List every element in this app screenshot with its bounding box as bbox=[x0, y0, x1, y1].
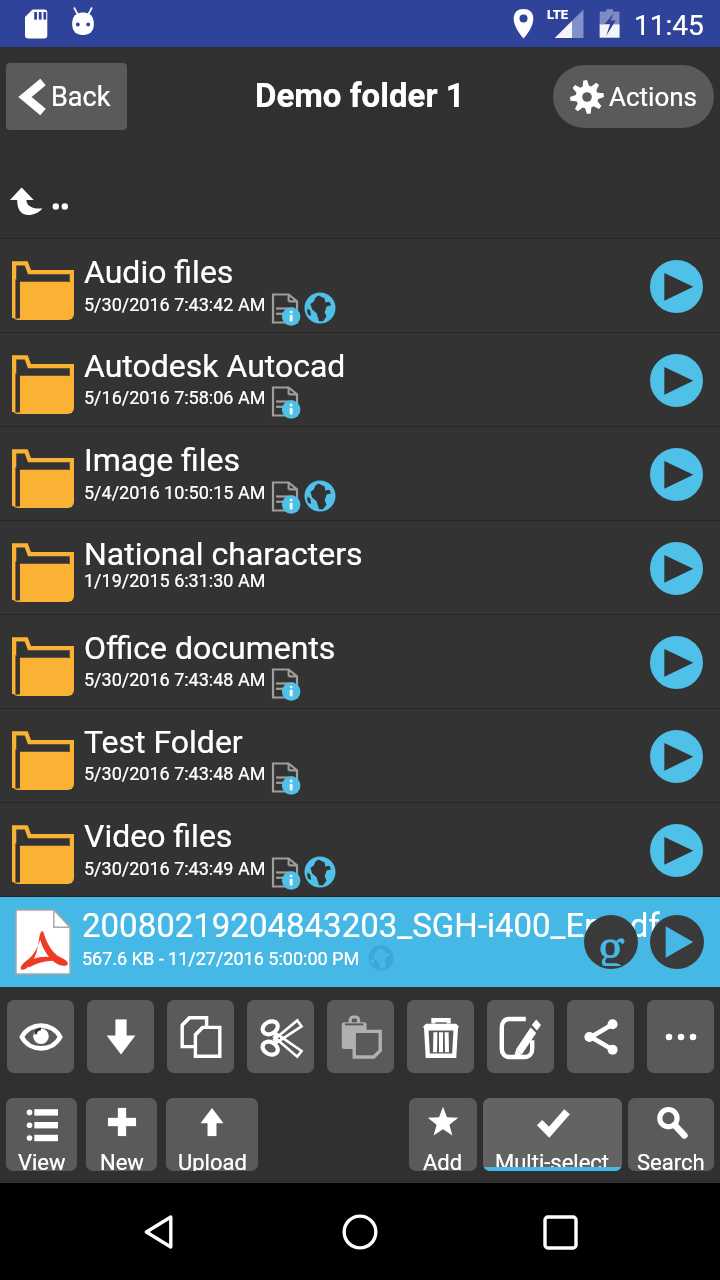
button[interactable]: Delete bbox=[407, 1000, 474, 1073]
button[interactable]: Search bbox=[628, 1098, 714, 1171]
staticText: Back bbox=[51, 81, 111, 113]
button[interactable]: View bbox=[6, 1098, 77, 1171]
staticText: Audio files bbox=[84, 253, 234, 291]
button[interactable]: Play bbox=[650, 542, 703, 595]
button[interactable]: Back bbox=[120, 1192, 200, 1272]
button[interactable]: Play bbox=[650, 260, 703, 313]
staticText: Video files bbox=[84, 817, 233, 855]
button[interactable]: Play bbox=[650, 354, 703, 407]
staticText: 5/30/2016 7:43:48 AM bbox=[84, 763, 266, 784]
button[interactable]: Autodesk Autocad bbox=[0, 333, 720, 427]
staticText: LTE bbox=[547, 7, 569, 22]
staticText: Multi-select bbox=[495, 1150, 610, 1171]
staticText: Search bbox=[637, 1150, 705, 1171]
button[interactable]: Cut bbox=[247, 1000, 314, 1073]
staticText: 5/4/2016 10:50:15 AM bbox=[84, 482, 266, 503]
button[interactable]: Play bbox=[650, 730, 703, 783]
button[interactable]: New bbox=[86, 1098, 157, 1171]
staticText: 11:45 bbox=[634, 9, 704, 42]
staticText: 1/19/2015 6:31:30 AM bbox=[84, 570, 266, 591]
button[interactable]: Rename bbox=[487, 1000, 554, 1073]
button[interactable]: Copy bbox=[167, 1000, 234, 1073]
button[interactable]: Audio files bbox=[0, 239, 720, 333]
button[interactable]: Share bbox=[567, 1000, 634, 1073]
staticText: Demo folder 1 bbox=[255, 76, 465, 115]
staticText: 5/30/2016 7:43:42 AM bbox=[84, 294, 266, 315]
button[interactable]: Upload bbox=[166, 1098, 258, 1171]
staticText: Office documents bbox=[84, 629, 336, 667]
button[interactable]: Paste bbox=[327, 1000, 394, 1073]
staticText: Upload bbox=[178, 1150, 247, 1171]
button[interactable]: Play bbox=[650, 915, 704, 969]
staticText: Image files bbox=[84, 441, 241, 479]
button[interactable]: Back bbox=[6, 63, 127, 130]
button[interactable]: Play bbox=[650, 636, 703, 689]
button[interactable]: Preview bbox=[7, 1000, 74, 1073]
button[interactable]: Play bbox=[650, 824, 703, 877]
button[interactable]: National characters bbox=[0, 521, 720, 615]
button[interactable] bbox=[0, 143, 720, 239]
button[interactable]: Recents bbox=[520, 1192, 600, 1272]
staticText: 20080219204843203_SGH-i400_En.pdf bbox=[82, 906, 660, 945]
staticText: Actions bbox=[609, 82, 698, 112]
button[interactable]: Actions bbox=[553, 65, 714, 128]
staticText: 5/30/2016 7:43:49 AM bbox=[84, 858, 266, 879]
staticText: National characters bbox=[84, 535, 363, 573]
staticText: g bbox=[597, 915, 625, 966]
button[interactable]: Download bbox=[87, 1000, 154, 1073]
staticText: Test Folder bbox=[84, 723, 243, 761]
button[interactable]: Image files bbox=[0, 427, 720, 521]
button[interactable]: Add bbox=[409, 1098, 477, 1171]
button[interactable]: 20080219204843203_SGH-i400_En.pdf bbox=[0, 897, 720, 987]
button[interactable]: Test Folder bbox=[0, 709, 720, 803]
button[interactable]: Play bbox=[650, 448, 703, 501]
button[interactable]: Video files bbox=[0, 803, 720, 897]
button[interactable]: Open with Google bbox=[584, 915, 638, 969]
button[interactable]: More bbox=[647, 1000, 714, 1073]
staticText: 567.6 KB - 11/27/2016 5:00:00 PM bbox=[82, 948, 360, 969]
button[interactable]: Office documents bbox=[0, 615, 720, 709]
staticText: 5/30/2016 7:43:48 AM bbox=[84, 669, 266, 690]
staticText: Add bbox=[423, 1150, 463, 1171]
staticText: View bbox=[18, 1150, 66, 1171]
staticText: 5/16/2016 7:58:06 AM bbox=[84, 387, 266, 408]
staticText: Autodesk Autocad bbox=[84, 347, 346, 385]
button[interactable]: Home bbox=[320, 1192, 400, 1272]
button[interactable]: Multi-select bbox=[483, 1098, 622, 1171]
staticText: New bbox=[100, 1150, 144, 1171]
